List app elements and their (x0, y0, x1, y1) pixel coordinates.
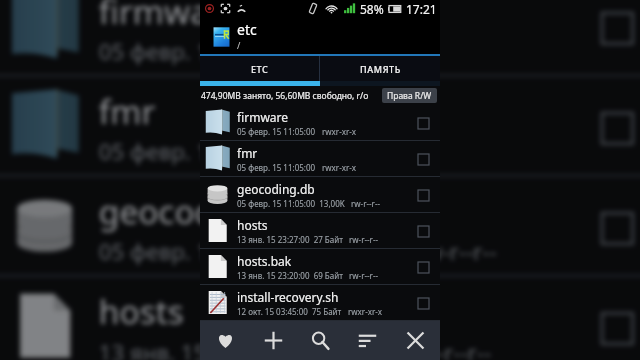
button[interactable]: firmware (200, 105, 440, 140)
staticText: hosts (99, 288, 185, 333)
staticText: etc (237, 20, 257, 39)
staticText: rw-r--r-- (349, 270, 379, 281)
button[interactable]: ПАМЯТЬ (320, 56, 440, 81)
staticText: rw-r--r-- (416, 235, 499, 266)
staticText: 474,90MB занято, 56,60MB свободно, r/o (201, 90, 369, 102)
staticText: 13 янв. 15 23:27:00 27 Байт (99, 335, 394, 360)
button[interactable]: Favorite (203, 321, 247, 360)
staticText: rw-r--r-- (351, 198, 381, 209)
button[interactable]: Select (410, 254, 436, 280)
staticText: / (237, 39, 241, 51)
staticText: 05 февр. 15 11:05:00 (237, 162, 316, 173)
staticText: rwxr-xr-x (322, 126, 357, 137)
staticText: 05 февр. 15 11:05:00 (99, 35, 318, 66)
staticText: 05 февр. 15 11:05:00 (237, 126, 316, 137)
button[interactable]: Select (410, 290, 436, 316)
staticText: rw-r--r-- (410, 335, 494, 360)
staticText: 13 янв. 15 23:20:00 69 Байт (237, 270, 343, 281)
button[interactable]: Select (410, 110, 436, 136)
staticText: firmware (99, 0, 243, 32)
staticText: rwxr-xr-x (322, 162, 357, 173)
staticText: 05 февр. 15 11:05:00 13,00K (237, 198, 345, 209)
button[interactable]: hosts (200, 213, 440, 248)
button[interactable]: Права R/W (382, 88, 437, 103)
button[interactable]: Search (298, 321, 342, 360)
button[interactable]: fmr (200, 141, 440, 176)
staticText: hosts (237, 217, 268, 233)
staticText: geocoding.db (99, 188, 316, 233)
staticText: 05 февр. 15 11:05:00 (99, 135, 318, 166)
staticText: fmr (237, 145, 258, 161)
button[interactable]: Sort (345, 321, 389, 360)
staticText: rwxr-xr-x (335, 35, 432, 66)
staticText: install-recovery.sh (237, 289, 339, 305)
staticText: 58% (360, 1, 384, 17)
button[interactable]: Select (410, 182, 436, 208)
staticText: ПАМЯТЬ (360, 63, 401, 75)
staticText: 12 окт. 15 03:45:00 75 Байт (237, 306, 342, 317)
button[interactable]: Select (410, 146, 436, 172)
staticText: ETC (251, 63, 269, 75)
button[interactable]: Select (410, 218, 436, 244)
button[interactable]: etc (200, 17, 440, 54)
staticText: rw-r--r-- (349, 234, 379, 245)
button[interactable]: geocoding.db (200, 177, 440, 212)
staticText: firmware (237, 109, 289, 125)
staticText: rwxr-xr-x (335, 135, 432, 166)
staticText: 13 янв. 15 23:27:00 27 Байт (237, 234, 343, 245)
staticText: 17:21 (406, 1, 437, 17)
button[interactable]: Add (251, 321, 295, 360)
staticText: rwxr-xr-x (348, 306, 383, 317)
button[interactable]: ETC (200, 56, 319, 81)
button[interactable]: hosts.bak (200, 249, 440, 284)
button[interactable]: Close (393, 321, 437, 360)
staticText: 05 февр. 15 11:05:00 13,00K (99, 235, 399, 266)
staticText: geocoding.db (237, 181, 315, 197)
staticText: Права R/W (387, 90, 432, 102)
staticText: hosts.bak (237, 253, 292, 269)
staticText: fmr (99, 88, 157, 133)
button[interactable]: install-recovery.sh (200, 285, 440, 320)
